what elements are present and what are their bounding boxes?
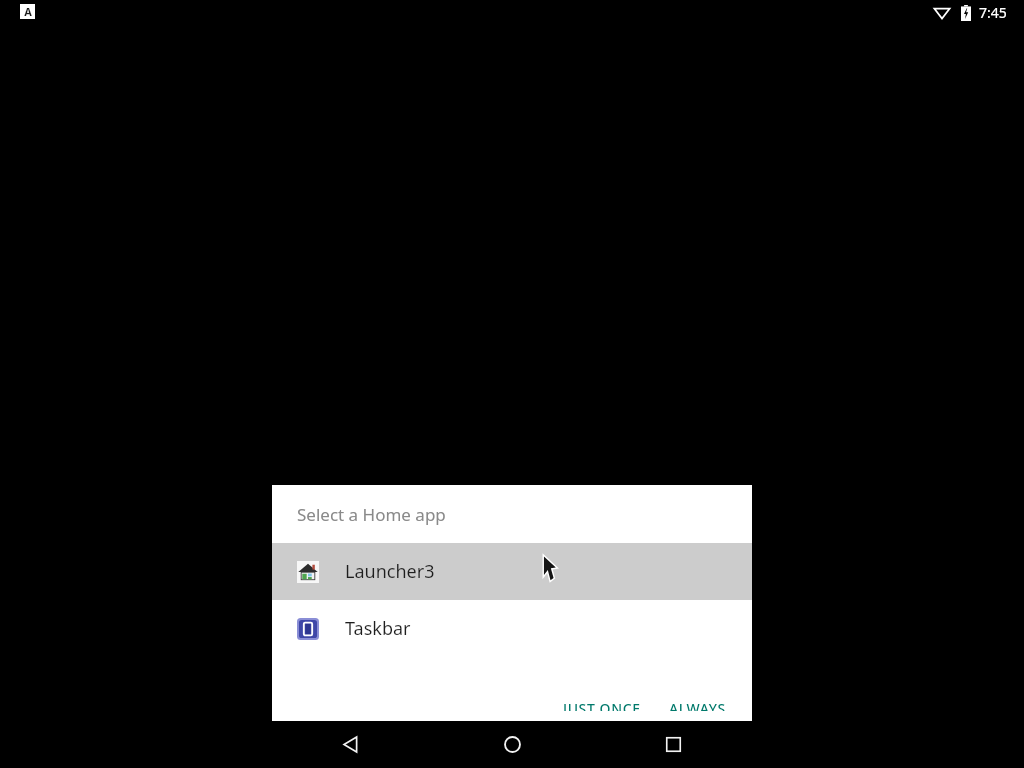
button[interactable]: Taskbar [272,600,752,657]
staticText: 7:45 [979,3,1007,22]
button[interactable]: JUST ONCE [553,689,651,721]
button[interactable]: Recent apps [649,721,697,768]
button[interactable]: Launcher3 [272,543,752,600]
staticText: Taskbar [345,616,411,641]
staticText: Launcher3 [345,559,435,584]
staticText: ALWAYS [669,699,726,711]
button[interactable]: Home [488,721,536,768]
staticText: JUST ONCE [563,699,641,711]
button[interactable]: Back [326,721,374,768]
staticText: Select a Home app [297,503,446,526]
staticText: A [24,4,32,19]
button[interactable]: ALWAYS [659,689,736,721]
